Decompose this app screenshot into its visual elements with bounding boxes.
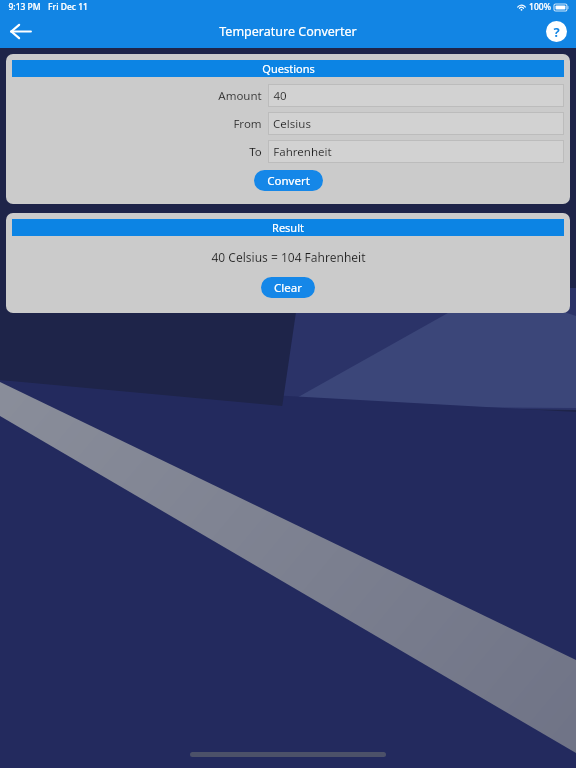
- staticText: Questions: [262, 61, 315, 76]
- button[interactable]: Fahrenheit: [268, 140, 564, 163]
- staticText: 40 Celsius = 104 Fahrenheit: [211, 249, 366, 265]
- button[interactable]: Celsius: [268, 112, 564, 135]
- staticText: 40: [273, 88, 287, 104]
- button[interactable]: 40: [268, 84, 564, 107]
- button[interactable]: Clear: [261, 277, 315, 298]
- staticText: From: [233, 116, 262, 132]
- staticText: Fahrenheit: [273, 144, 332, 160]
- button[interactable]: Back: [3, 14, 37, 48]
- staticText: 9:13 PM: [8, 1, 41, 13]
- staticText: Result: [272, 220, 304, 235]
- staticText: Convert: [267, 173, 310, 189]
- staticText: ?: [553, 23, 560, 41]
- button[interactable]: Convert: [254, 170, 323, 191]
- staticText: Temperature Converter: [219, 23, 357, 40]
- staticText: Clear: [274, 280, 302, 296]
- staticText: 100%: [529, 1, 551, 13]
- staticText: Celsius: [273, 116, 311, 132]
- staticText: Fri Dec 11: [48, 1, 88, 13]
- button[interactable]: Help: [541, 16, 571, 46]
- staticText: To: [249, 144, 262, 160]
- staticText: Amount: [218, 88, 262, 104]
